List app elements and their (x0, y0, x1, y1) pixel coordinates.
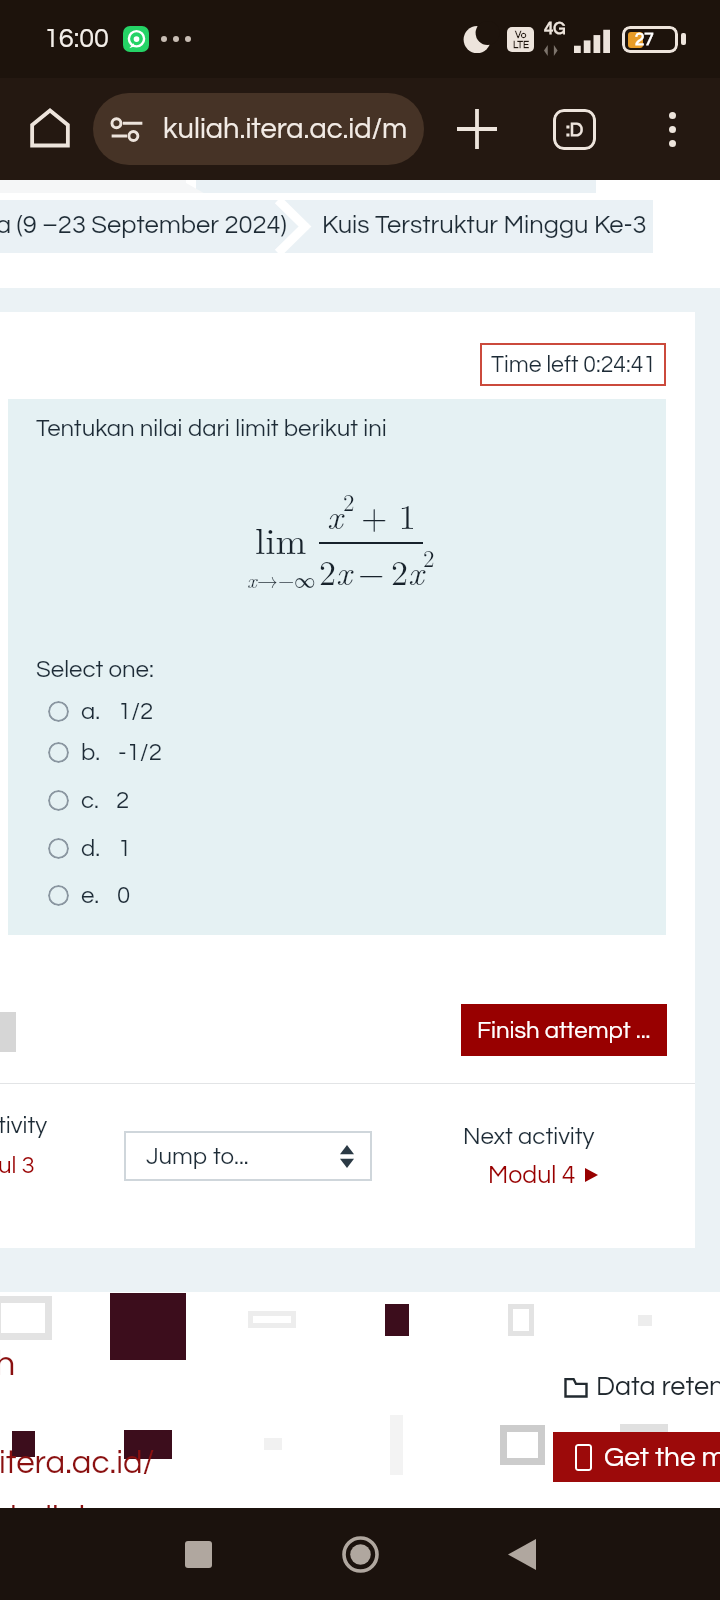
staticText: Vo (515, 30, 527, 40)
staticText: Tentukan nilai dari limit berikut ini (36, 416, 387, 441)
staticText: :D (566, 120, 584, 140)
staticText: 16:00 (44, 25, 109, 53)
button[interactable]: b. (40, 729, 340, 775)
staticText: e. (81, 883, 100, 908)
staticText: − (358, 547, 385, 595)
button[interactable]: c. (40, 777, 340, 823)
staticText: 2 (116, 788, 130, 813)
staticText: h (0, 1345, 16, 1382)
button[interactable]: Get the mobile app (553, 1432, 720, 1482)
button[interactable]: Recent apps (167, 1523, 229, 1585)
staticText: Get the mobile (604, 1443, 720, 1472)
button[interactable]: kuliah.itera.ac.id/m (93, 93, 424, 165)
staticText: tivity (0, 1113, 48, 1138)
button[interactable] (308, 200, 653, 253)
staticText: Finish attempt ... (477, 1018, 651, 1043)
staticText: kuliah (10, 1501, 98, 1535)
staticText: c. (81, 788, 99, 813)
staticText: →−∞ (257, 564, 316, 594)
staticText: kuliah.itera.ac.id/m (163, 114, 408, 144)
button[interactable]: e. (40, 872, 340, 918)
staticText: Time left 0:24:41 (491, 353, 656, 377)
staticText: a. (81, 699, 101, 724)
staticText: x (336, 547, 352, 595)
staticText: 2 (343, 485, 355, 518)
staticText: -1/2 (118, 740, 162, 765)
staticText: itera.ac.id/ (0, 1446, 155, 1480)
staticText: Next activity (463, 1124, 595, 1149)
button[interactable]: More options (640, 97, 704, 161)
staticText: 2 (319, 547, 336, 595)
staticText: 1/2 (118, 699, 154, 724)
staticText: ul 3 (0, 1153, 35, 1178)
staticText: x (247, 564, 257, 594)
button[interactable]: Data retention summary (554, 1368, 720, 1406)
staticText: x (327, 491, 343, 539)
staticText: b. (81, 740, 101, 765)
button[interactable]: Finish attempt ... (461, 1004, 667, 1056)
staticText: Modul 4 (488, 1162, 576, 1188)
staticText: 4G (544, 20, 566, 38)
button[interactable]: Tabs (542, 97, 606, 161)
button[interactable]: New tab (445, 97, 509, 161)
button[interactable]: Jump to... (124, 1131, 372, 1181)
button[interactable]: Back (491, 1523, 553, 1585)
staticText: a (9 –23 September 2024) (0, 212, 287, 238)
staticText: lim (255, 512, 307, 564)
button[interactable]: d. (40, 825, 340, 871)
button[interactable]: Modul 4 (488, 1162, 598, 1188)
staticText: LTE (513, 40, 529, 50)
staticText: Kuis Terstruktur Minggu Ke-3 (322, 212, 647, 238)
staticText: x (408, 547, 423, 595)
staticText: 2 (391, 547, 408, 595)
staticText: 1 (118, 836, 132, 861)
staticText: d. (81, 836, 101, 861)
staticText: + 1 (361, 491, 416, 539)
staticText: Data retention summary (596, 1373, 720, 1401)
button[interactable] (0, 200, 276, 253)
staticText: 0 (117, 883, 131, 908)
button[interactable]: Home (18, 96, 82, 160)
staticText: Jump to... (146, 1144, 249, 1169)
button[interactable]: a. (40, 688, 340, 734)
button[interactable]: Home (329, 1523, 391, 1585)
staticText: Select one: (36, 657, 154, 682)
staticText: 27 (635, 31, 654, 49)
